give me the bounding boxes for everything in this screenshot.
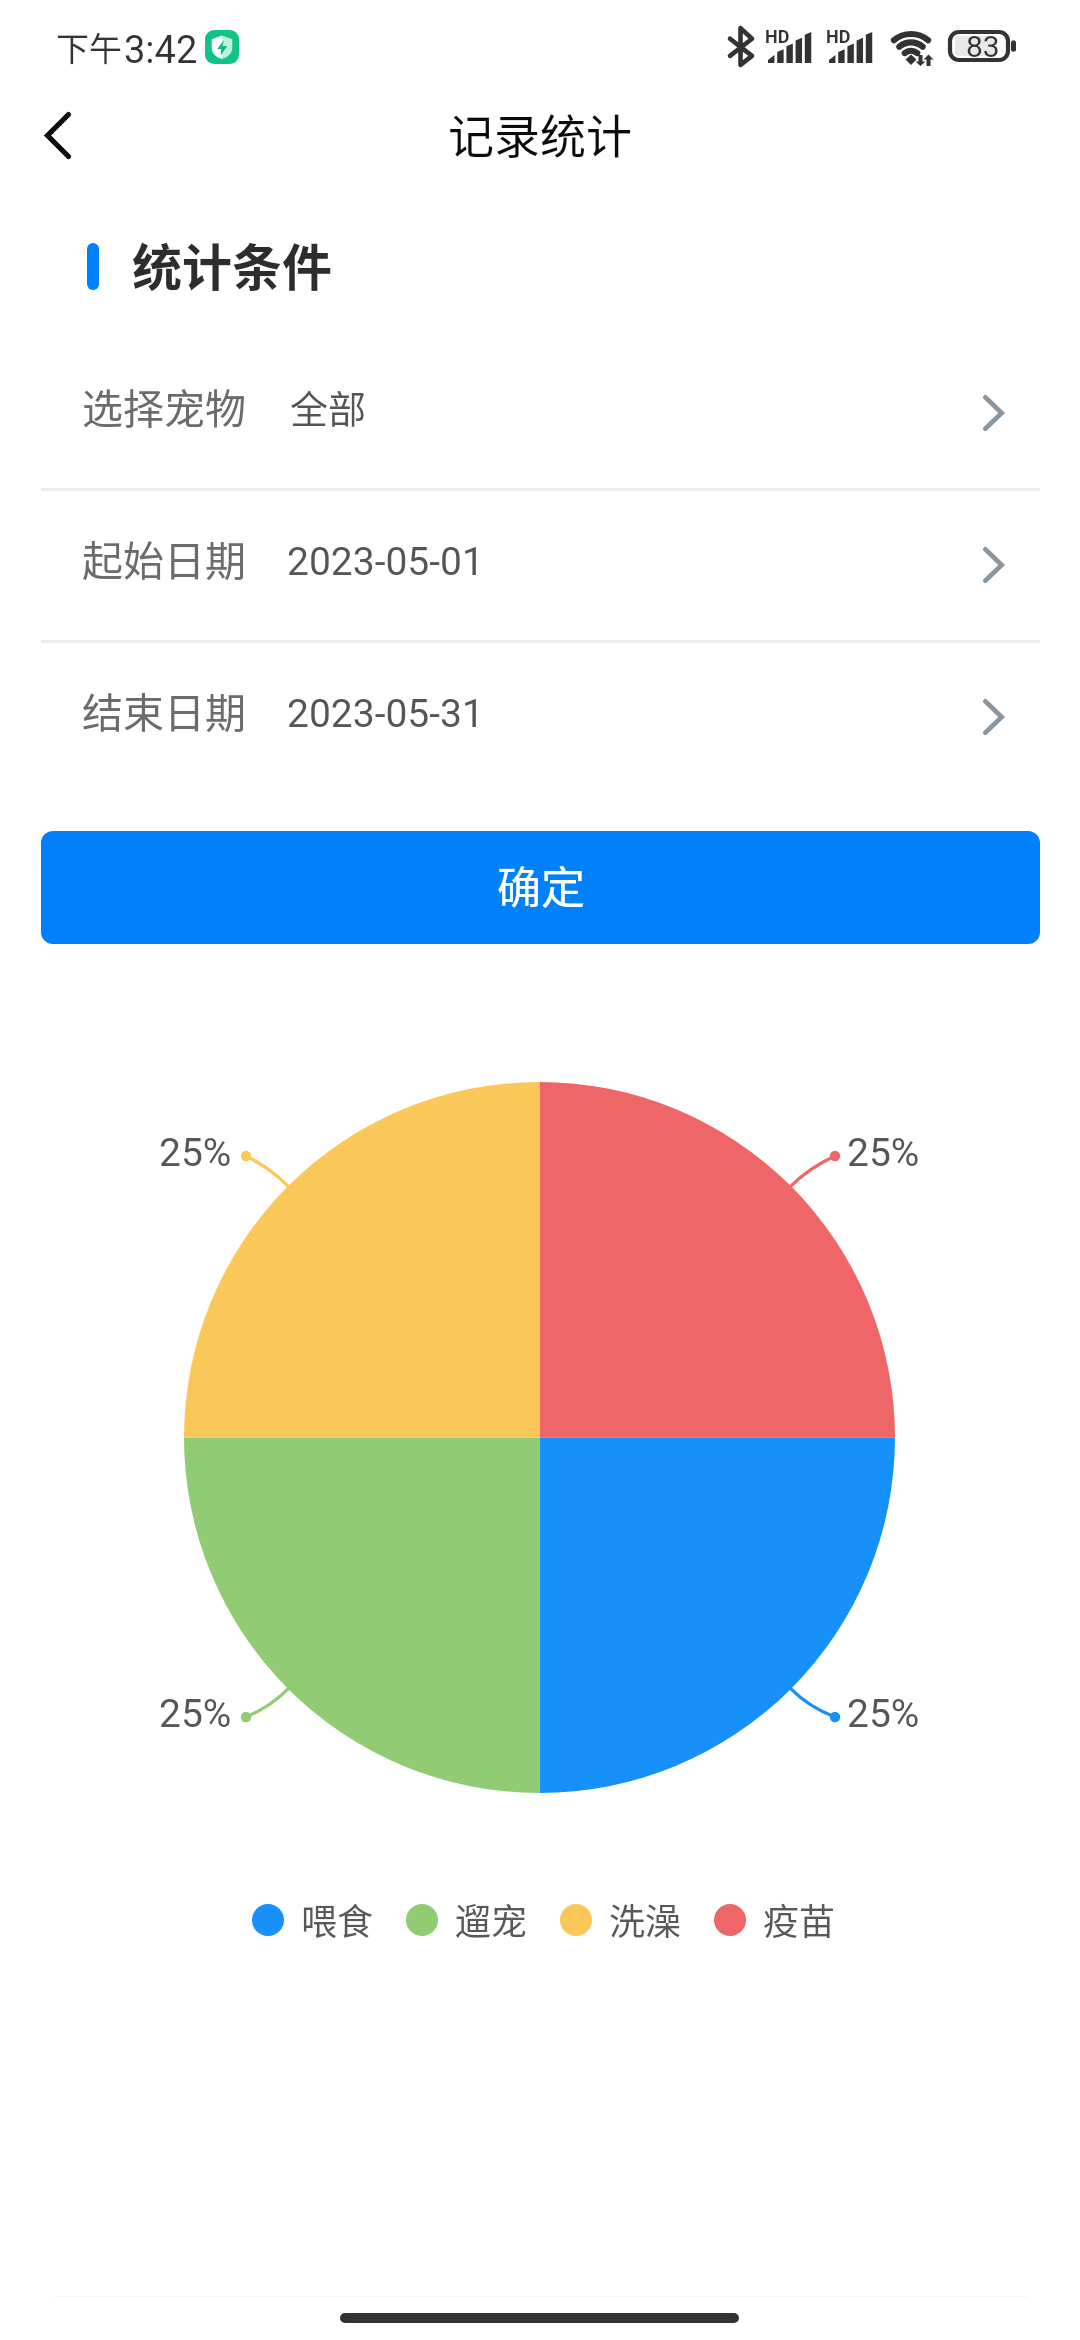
button[interactable]: 确定 (41, 831, 1040, 944)
button[interactable]: 洗澡 (560, 1894, 682, 1946)
staticText: 3:42 (124, 28, 198, 73)
button[interactable]: 结束日期 (0, 640, 1080, 792)
staticText: 25% (847, 1130, 920, 1176)
staticText: 遛宠 (455, 1893, 528, 1945)
staticText: 确定 (497, 853, 585, 917)
staticText: 25% (847, 1691, 920, 1737)
staticText: HD (765, 26, 790, 47)
staticText: 25% (159, 1130, 232, 1176)
staticText: 记录统计 (448, 100, 632, 167)
button[interactable]: 起始日期 (0, 488, 1080, 640)
staticText: 结束日期 (82, 680, 246, 739)
staticText: 25% (159, 1691, 232, 1737)
staticText: 2023-05-01 (287, 539, 484, 585)
button[interactable]: 遛宠 (406, 1894, 528, 1946)
staticText: 洗澡 (609, 1893, 682, 1945)
staticText: 2023-05-31 (287, 691, 484, 737)
staticText: 下午 (56, 23, 122, 71)
button[interactable]: Back (2, 90, 114, 180)
staticText: 起始日期 (82, 528, 246, 587)
staticText: HD (826, 26, 851, 47)
staticText: 全部 (290, 379, 367, 434)
staticText: 喂食 (301, 1893, 374, 1945)
staticText: 统计条件 (132, 228, 332, 300)
staticText: 疫苗 (763, 1893, 836, 1945)
staticText: 选择宠物 (82, 376, 246, 435)
button[interactable]: 选择宠物 (0, 336, 1080, 488)
button[interactable]: 喂食 (252, 1894, 374, 1946)
staticText: 83 (966, 29, 1000, 64)
button[interactable]: 疫苗 (714, 1894, 836, 1946)
